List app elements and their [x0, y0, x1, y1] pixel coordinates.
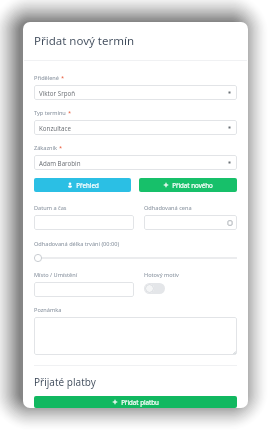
button[interactable]: Hotový motiv toggle [144, 283, 165, 294]
staticText: Viktor Srpoň [39, 89, 227, 97]
button[interactable]: Odhadovaná délka trvání slider [34, 254, 237, 262]
staticText: Odhadovaná cena [144, 204, 192, 212]
staticText: Zákazník [34, 144, 57, 152]
staticText: Datum a čas [34, 204, 67, 212]
staticText: Přidat nový termín [34, 33, 135, 49]
staticText: Přidat platbu [121, 398, 159, 406]
staticText: Odhadovaná délka trvání (00:00) [34, 240, 120, 248]
staticText: * [59, 144, 63, 152]
staticText: Přidělené [34, 74, 59, 82]
button[interactable] [144, 215, 237, 230]
button[interactable] [34, 215, 134, 230]
staticText: Poznámka [34, 306, 62, 314]
button[interactable]: Adam Barobin [34, 155, 237, 170]
button[interactable]: Přehled [34, 178, 131, 192]
staticText: Typ termínu [34, 109, 66, 117]
button[interactable] [34, 282, 134, 297]
button[interactable]: Konzultace [34, 120, 237, 135]
staticText: Místo / Umístění [34, 271, 78, 279]
staticText: * [61, 74, 65, 82]
staticText: Přehled [76, 181, 99, 189]
button[interactable]: Přidat nového [139, 178, 237, 192]
button[interactable]: Viktor Srpoň [34, 85, 237, 100]
staticText: * [68, 109, 72, 117]
button[interactable] [34, 317, 237, 355]
button[interactable]: Přidat platbu [34, 396, 237, 408]
staticText: Konzultace [39, 124, 227, 132]
staticText: Hotový motiv [144, 271, 179, 279]
staticText: Přidat nového [172, 181, 213, 189]
staticText: Přijaté platby [34, 375, 96, 389]
staticText: Adam Barobin [39, 159, 227, 167]
